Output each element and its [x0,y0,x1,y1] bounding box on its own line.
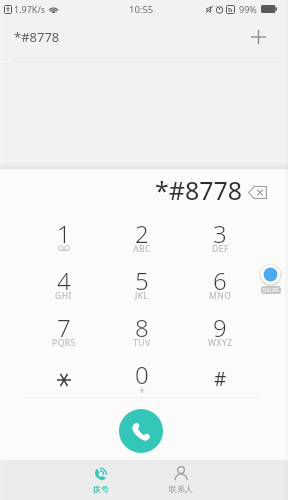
staticText: 10:55 [129,3,154,16]
staticText: 4 [57,264,71,297]
staticText: PQRS [52,337,76,349]
staticText: MNO [209,290,232,302]
staticText: 02:29 [263,286,279,294]
button[interactable]: Call [119,409,163,453]
staticText: # [214,366,227,392]
staticText: DEF [212,243,229,255]
button[interactable]: Add contact [239,18,277,56]
staticText: TUV [133,337,151,349]
staticText: 0 [135,358,149,391]
staticText: *#8778 [14,28,60,46]
button[interactable]: # [181,358,259,405]
staticText: 3 [213,217,227,250]
button[interactable]: 1 [24,217,103,264]
button[interactable]: 4 [24,264,103,311]
staticText: JKL [135,290,149,302]
staticText: 5 [135,264,149,297]
button[interactable]: 8 [103,311,181,358]
staticText: 1.97K/s [14,3,46,15]
staticText: GHI [55,290,72,302]
button[interactable]: Delete [243,176,277,206]
button[interactable]: 拨号 [61,460,141,500]
button[interactable]: Screen recorder [259,263,282,286]
button[interactable]: 6 [181,264,259,311]
button[interactable]: 0 [103,358,181,405]
button[interactable]: 2 [103,217,181,264]
staticText: + [139,383,145,397]
button[interactable] [24,358,103,405]
staticText: 9 [213,311,227,344]
staticText: 拨号 [93,484,109,494]
button[interactable]: 联系人 [141,460,221,500]
staticText: 99% [239,3,257,15]
staticText: 1 [57,217,71,250]
staticText: 6 [213,264,227,297]
button[interactable]: 5 [103,264,181,311]
button[interactable]: 7 [24,311,103,358]
button[interactable]: 3 [181,217,259,264]
staticText: 2 [135,217,149,250]
button[interactable]: 9 [181,311,259,358]
staticText: 7 [57,311,71,344]
staticText: 8 [135,311,149,344]
staticText: 联系人 [169,484,193,494]
staticText: WXYZ [208,337,233,349]
staticText: *#8778 [155,173,243,207]
staticText: ABC [133,243,151,255]
